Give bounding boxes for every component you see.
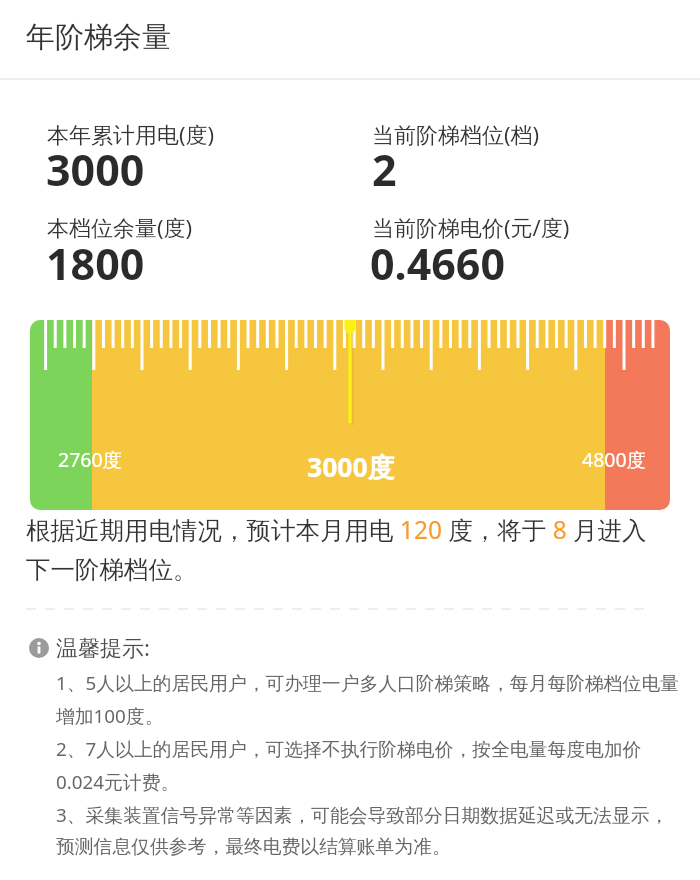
staticText: 1800: [46, 234, 145, 293]
staticText: 温馨提示:: [56, 632, 150, 662]
staticText: 根据近期用电情况，预计本月用电 120 度，将于 8 月进入: [26, 513, 647, 546]
staticText: 增加100度。: [56, 703, 164, 729]
button[interactable]: [30, 320, 670, 510]
staticText: 本年累计用电(度): [47, 119, 215, 149]
staticText: 4800度: [582, 446, 647, 473]
staticText: 本档位余量(度): [47, 212, 193, 242]
staticText: 2760度: [58, 446, 123, 473]
staticText: 1、5人以上的居民用户，可办理一户多人口阶梯策略，每月每阶梯档位电量: [56, 670, 680, 696]
staticText: 3、采集装置信号异常等因素，可能会导致部分日期数据延迟或无法显示，: [56, 802, 669, 828]
staticText: 预测信息仅供参考，最终电费以结算账单为准。: [56, 835, 451, 859]
staticText: 0.4660: [370, 234, 506, 293]
staticText: 2: [372, 140, 397, 199]
staticText: 当前阶梯档位(档): [372, 119, 540, 149]
staticText: 2、7人以上的居民用户，可选择不执行阶梯电价，按全电量每度电加价: [56, 736, 642, 762]
staticText: 0.024元计费。: [56, 769, 180, 795]
staticText: 3000: [46, 140, 145, 199]
staticText: 3000度: [307, 449, 395, 485]
staticText: 下一阶梯档位。: [26, 554, 198, 585]
staticText: 当前阶梯电价(元/度): [372, 212, 570, 242]
button[interactable]: 年阶梯余量: [0, 0, 145, 37]
